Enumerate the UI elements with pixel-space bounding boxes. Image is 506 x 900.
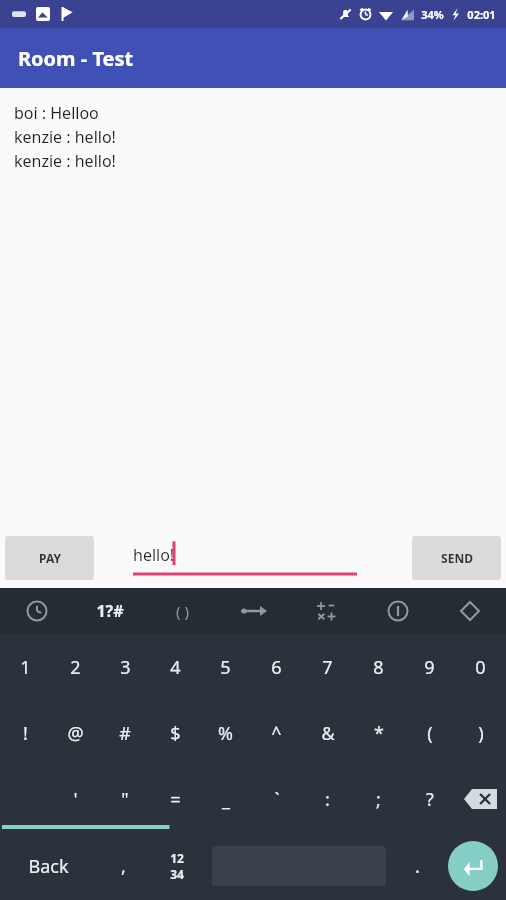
staticText: 4 [170,655,181,680]
staticText: 34% [421,7,444,22]
staticText: ' [73,787,78,812]
staticText: PAY [39,550,61,566]
button[interactable]: PAY [5,536,94,580]
staticText: 34 [170,866,184,882]
button[interactable]: " [100,766,150,832]
button[interactable]: Keyboard tool [434,588,506,634]
staticText: ( [427,721,433,746]
staticText: ( ) [176,601,189,621]
staticText: = [170,787,181,812]
staticText: 0 [475,655,486,680]
button[interactable]: ' [50,766,100,832]
staticText: . [415,854,420,879]
button[interactable]: 4 [150,634,200,700]
button[interactable]: 6 [251,634,302,700]
button[interactable]: Numbers [150,832,204,900]
staticText: 9 [424,655,435,680]
staticText: _ [222,787,230,812]
staticText: 3 [120,655,131,680]
staticText: 8 [373,655,384,680]
staticText: & [321,721,335,746]
staticText: 1?# [96,600,124,622]
button[interactable]: Keyboard tool [218,588,290,634]
button[interactable]: ; [353,766,404,832]
staticText: 02:01 [467,7,496,22]
staticText: ? [426,787,434,812]
button[interactable]: 1 [0,634,50,700]
staticText: * [374,721,384,746]
button[interactable]: 5 [200,634,251,700]
button[interactable]: Keyboard tool [146,588,218,634]
staticText: hello! [133,544,175,566]
button[interactable]: 7 [302,634,353,700]
button[interactable]: * [353,700,404,766]
staticText: ` [274,787,280,812]
button[interactable]: 3 [100,634,150,700]
staticText: kenzie : hello! [14,126,116,148]
staticText: # [119,721,131,746]
button[interactable]: ) [455,700,506,766]
staticText: : [325,787,330,812]
staticText: ! [23,721,28,746]
staticText: " [121,787,129,812]
staticText: ; [376,787,381,812]
staticText: 7 [322,655,333,680]
staticText: 2 [70,655,81,680]
button[interactable]: ^ [251,700,302,766]
button[interactable]: @ [50,700,100,766]
staticText: ^ [271,721,282,746]
staticText: $ [170,721,181,746]
staticText: @ [67,721,84,746]
button[interactable]: ` [251,766,302,832]
button[interactable]: SEND [412,536,501,580]
button[interactable]: , [96,832,150,900]
button[interactable]: hello! [133,536,357,580]
staticText: , [121,854,126,879]
staticText: 1 [20,655,31,680]
staticText: 6 [271,655,282,680]
button[interactable]: Back [0,832,96,900]
button[interactable] [0,766,50,832]
button[interactable]: Keyboard tool [290,588,362,634]
staticText: SEND [441,550,473,566]
button[interactable]: # [100,700,150,766]
button[interactable]: ( [404,700,455,766]
button[interactable]: Keyboard tool [73,588,146,634]
staticText: boi : Helloo [14,102,99,124]
staticText: kenzie : hello! [14,150,116,172]
button[interactable]: 8 [353,634,404,700]
staticText: Room - Test [18,45,134,72]
button[interactable]: $ [150,700,200,766]
staticText: Back [28,854,69,879]
button[interactable]: Enter [440,832,506,900]
button[interactable]: % [200,700,251,766]
button[interactable]: _ [200,766,251,832]
staticText: ) [478,721,484,746]
staticText: % [218,721,233,746]
button[interactable]: : [302,766,353,832]
button[interactable]: . [394,832,440,900]
staticText: 5 [220,655,231,680]
button[interactable]: ! [0,700,50,766]
button[interactable]: 9 [404,634,455,700]
button[interactable]: Backspace [455,766,506,832]
button[interactable]: & [302,700,353,766]
button[interactable]: Keyboard tool [362,588,434,634]
staticText: 12 [170,850,184,866]
button[interactable]: 0 [455,634,506,700]
button[interactable]: 2 [50,634,100,700]
button[interactable]: Keyboard tool [0,588,73,634]
button[interactable]: ? [404,766,455,832]
button[interactable]: = [150,766,200,832]
